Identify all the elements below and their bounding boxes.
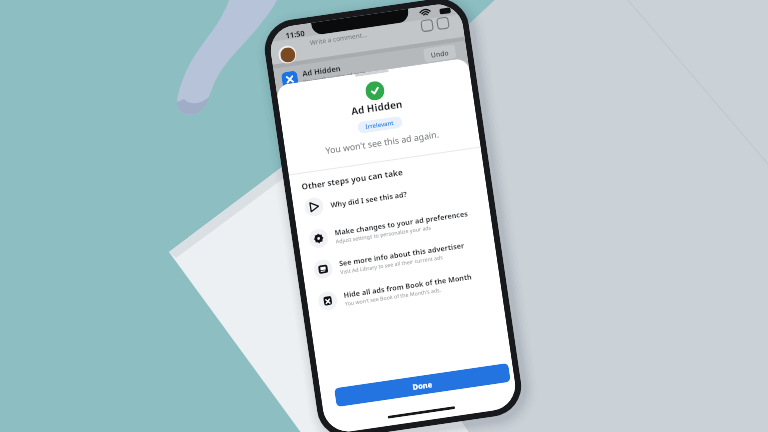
staticText: You won't see this ad again (303, 69, 367, 85)
staticText: Hide all ads from Book of the Month (343, 271, 473, 300)
staticText: Make changes to your ad preferences (334, 208, 469, 238)
button[interactable]: Irrelevant (365, 119, 395, 131)
button[interactable]: Done (334, 363, 511, 407)
button[interactable]: Why did I see this ad? (303, 173, 484, 218)
staticText: Done (412, 379, 433, 392)
staticText: Undo (430, 48, 449, 60)
staticText: You won't see Book of the Month's ads. (344, 286, 442, 307)
button[interactable]: Hide all ads from Book of the Month (317, 267, 498, 312)
staticText: Write a comment... (309, 30, 368, 47)
staticText: You won't see this ad again. (325, 128, 440, 157)
button[interactable]: Undo (423, 44, 457, 63)
staticText: Why did I see this ad? (330, 189, 408, 210)
staticText: Adjust settings to personalize your ads (335, 223, 432, 244)
button[interactable]: See more info about this advertiser (312, 235, 493, 280)
staticText: Visit Ad Library to see all their curren… (340, 253, 444, 275)
button[interactable]: Make changes to your ad preferences (308, 204, 489, 249)
staticText: 11:50 (285, 28, 306, 41)
staticText: Other steps you can take (301, 166, 404, 192)
staticText: See more info about this advertiser (338, 240, 465, 268)
staticText: Ad Hidden (350, 96, 404, 118)
staticText: Ad Hidden (301, 63, 341, 78)
staticText: Irrelevant (365, 119, 395, 131)
